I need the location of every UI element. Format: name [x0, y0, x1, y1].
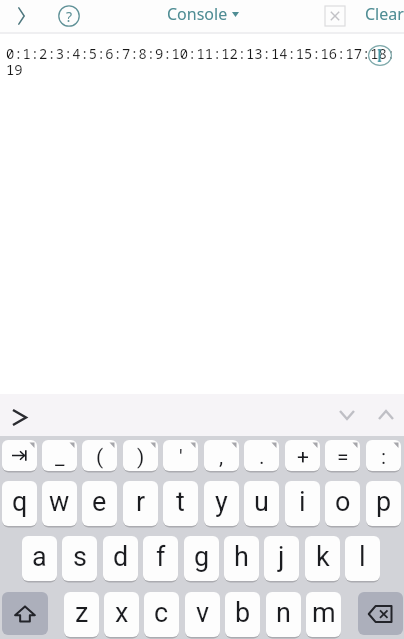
staticText: m — [312, 597, 336, 629]
button[interactable]: e — [82, 481, 117, 526]
staticText: v — [196, 597, 210, 629]
staticText: = — [337, 445, 349, 470]
button[interactable]: l — [345, 536, 380, 581]
button[interactable]: g — [184, 536, 219, 581]
staticText: x — [115, 597, 129, 629]
staticText: g — [194, 541, 210, 573]
button[interactable]: a — [22, 536, 57, 581]
staticText: _ — [55, 445, 65, 470]
staticText: s — [73, 541, 87, 573]
button[interactable]: c — [144, 592, 179, 637]
staticText: j — [278, 541, 285, 573]
staticText: e — [92, 486, 107, 518]
button[interactable]: Help — [53, 0, 85, 32]
button[interactable]: Backspace — [358, 592, 403, 635]
button[interactable]: Scroll up — [369, 398, 402, 431]
button[interactable]: r — [123, 481, 158, 526]
button[interactable]: f — [143, 536, 178, 581]
button[interactable]: i — [285, 481, 320, 526]
button[interactable]: o — [325, 481, 360, 526]
staticText: b — [235, 597, 251, 629]
staticText: Clear — [365, 3, 404, 25]
staticText: 0:1:2:3:4:5:6:7:8:9:10:11:12:13:14:15:16… — [6, 44, 396, 79]
button[interactable]: h — [224, 536, 259, 581]
staticText: h — [234, 541, 249, 573]
button[interactable]: s — [62, 536, 97, 581]
button[interactable]: Prompt — [2, 400, 36, 434]
staticText: a — [32, 541, 47, 573]
staticText: c — [154, 597, 169, 629]
button[interactable]: w — [42, 481, 77, 526]
button[interactable]: d — [103, 536, 138, 581]
staticText: r — [136, 486, 146, 518]
staticText: ? — [66, 7, 73, 26]
staticText: q — [12, 486, 28, 518]
button[interactable]: Clear — [358, 0, 404, 32]
button[interactable]: Tab — [2, 440, 37, 471]
staticText: l — [359, 541, 366, 573]
staticText: ) — [137, 445, 145, 470]
staticText: + — [297, 445, 309, 470]
staticText: o — [335, 486, 351, 518]
staticText: : — [381, 445, 387, 470]
staticText: i — [299, 486, 306, 518]
button[interactable]: x — [104, 592, 139, 637]
staticText: p — [376, 486, 392, 518]
button[interactable]: v — [185, 592, 220, 637]
button[interactable]: q — [2, 481, 37, 526]
button[interactable]: . — [244, 440, 279, 471]
staticText: y — [215, 486, 228, 518]
staticText: . — [259, 445, 265, 470]
button[interactable]: Shift — [2, 592, 48, 635]
button[interactable]: Scroll down — [330, 398, 363, 431]
button[interactable]: ) — [123, 440, 158, 471]
staticText: u — [254, 486, 269, 518]
button[interactable]: k — [305, 536, 340, 581]
button[interactable]: , — [204, 440, 239, 471]
button[interactable]: t — [163, 481, 198, 526]
button[interactable]: n — [266, 592, 301, 637]
staticText: f — [156, 541, 166, 573]
staticText: n — [276, 597, 291, 629]
button[interactable]: ' — [163, 440, 198, 471]
button[interactable]: Stop — [318, 0, 352, 32]
staticText: ( — [96, 445, 104, 470]
button[interactable]: = — [325, 440, 360, 471]
button[interactable]: b — [225, 592, 260, 637]
staticText: , — [219, 445, 224, 470]
button[interactable]: m — [306, 592, 341, 637]
button[interactable]: p — [366, 481, 401, 526]
button[interactable]: + — [285, 440, 320, 471]
staticText: k — [316, 541, 330, 573]
staticText: ' — [179, 445, 183, 470]
button[interactable]: z — [64, 592, 99, 637]
staticText: w — [49, 486, 70, 518]
button[interactable]: _ — [42, 440, 77, 471]
button[interactable]: u — [244, 481, 279, 526]
button[interactable]: Console — [160, 0, 244, 32]
button[interactable]: y — [204, 481, 239, 526]
button[interactable]: ( — [82, 440, 117, 471]
button[interactable]: Run — [5, 0, 37, 32]
staticText: z — [75, 597, 89, 629]
staticText: d — [113, 541, 129, 573]
staticText: Console — [167, 3, 228, 25]
button[interactable]: : — [366, 440, 401, 471]
staticText: t — [176, 486, 185, 518]
button[interactable]: j — [264, 536, 299, 581]
